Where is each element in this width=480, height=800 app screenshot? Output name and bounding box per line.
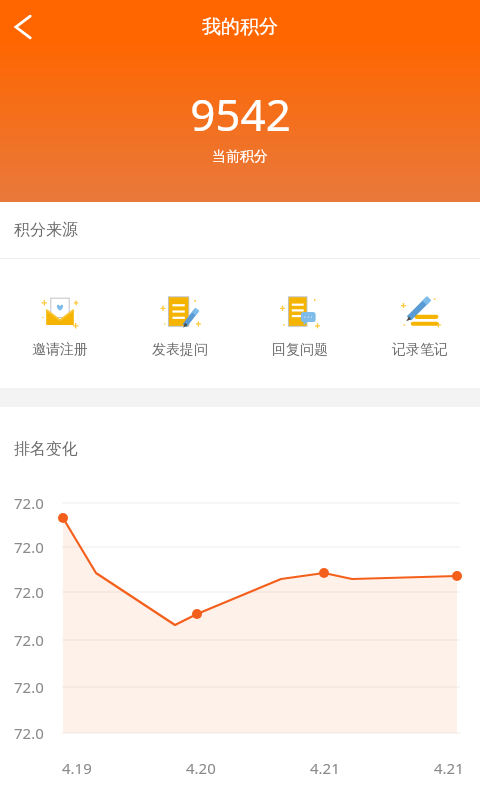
staticText: 邀请注册 [32,341,88,359]
staticText: 当前积分 [212,148,268,166]
staticText: 72.0 [14,723,44,743]
staticText: 9542 [190,84,291,144]
button[interactable]: Back [0,0,54,54]
staticText: 我的积分 [202,15,278,39]
staticText: 发表提问 [152,341,208,359]
staticText: 记录笔记 [392,341,448,359]
staticText: 72.0 [14,677,44,697]
staticText: 72.0 [14,582,44,602]
staticText: 72.0 [14,630,44,650]
button[interactable]: 回复问题 [240,283,360,365]
staticText: 积分来源 [14,220,78,240]
button[interactable]: 邀请注册 [0,283,120,365]
staticText: 4.19 [62,758,92,778]
staticText: 回复问题 [272,341,328,359]
staticText: 排名变化 [14,439,78,459]
button[interactable]: 发表提问 [120,283,240,365]
staticText: 4.20 [186,758,216,778]
button[interactable]: 记录笔记 [360,283,480,365]
staticText: 4.21 [310,758,340,778]
staticText: 4.21 [434,758,464,778]
staticText: 72.0 [14,493,44,513]
staticText: 72.0 [14,537,44,557]
